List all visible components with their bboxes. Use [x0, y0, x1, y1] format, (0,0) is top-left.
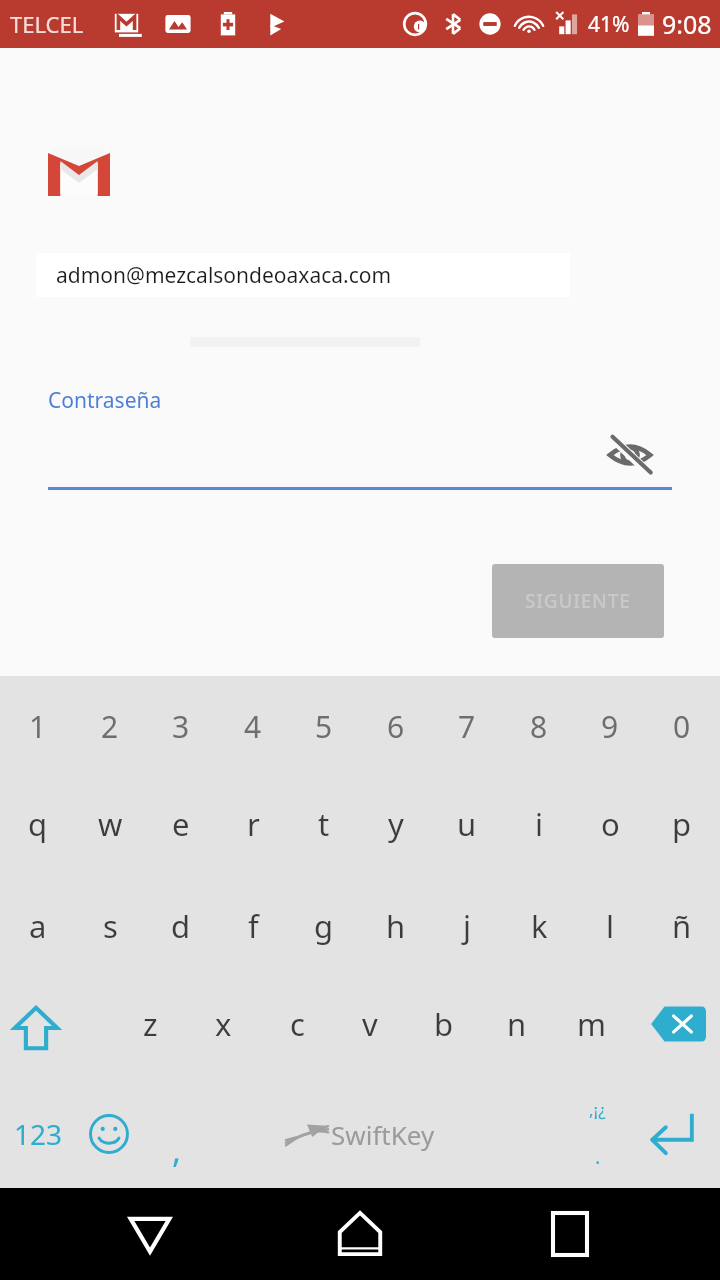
button[interactable]: admon@mezcalsondeoaxaca.com — [36, 253, 570, 297]
staticText: ñ — [672, 905, 692, 947]
button[interactable]: , — [146, 1110, 208, 1190]
button[interactable]: Mayúsculas — [0, 978, 72, 1078]
staticText: 0 — [673, 706, 691, 747]
button[interactable]: Inicio — [300, 1188, 420, 1280]
staticText: o — [601, 803, 620, 845]
staticText: i — [535, 803, 543, 845]
button[interactable]: Mostrar contraseña — [607, 436, 653, 474]
button[interactable]: Atrás — [90, 1188, 210, 1280]
button[interactable]: v — [336, 978, 404, 1078]
button[interactable]: l — [577, 878, 643, 978]
staticText: n — [507, 1003, 527, 1045]
staticText: SwiftKey — [331, 1117, 435, 1152]
button[interactable]: t — [291, 776, 357, 876]
button[interactable]: o — [577, 776, 643, 876]
staticText: ,¡¿ — [589, 1098, 606, 1121]
staticText: w — [98, 803, 123, 845]
staticText: z — [143, 1003, 158, 1045]
staticText: j — [463, 905, 471, 947]
button[interactable]: f — [220, 878, 286, 978]
button[interactable]: 4 — [220, 678, 286, 778]
button[interactable]: Emoji — [78, 1080, 140, 1188]
button[interactable]: Retroceso — [636, 978, 720, 1078]
button[interactable]: z — [116, 978, 184, 1078]
button[interactable]: i — [506, 776, 572, 876]
button[interactable]: SIGUIENTE — [492, 564, 664, 638]
staticText: 123 — [14, 1115, 63, 1153]
button[interactable]: d — [148, 878, 214, 978]
staticText: q — [28, 803, 48, 845]
button[interactable]: y — [363, 776, 429, 876]
button[interactable]: s — [77, 878, 143, 978]
button[interactable]: w — [77, 776, 143, 876]
staticText: 4 — [244, 706, 262, 747]
staticText: , — [172, 1127, 182, 1173]
button[interactable]: a — [5, 878, 71, 978]
button[interactable]: 8 — [506, 678, 572, 778]
button[interactable]: 123 — [4, 1080, 72, 1188]
staticText: 41% — [588, 10, 630, 39]
staticText: k — [531, 905, 548, 947]
button[interactable]: 0 — [649, 678, 715, 778]
button[interactable]: Recientes — [510, 1188, 630, 1280]
button[interactable]: n — [483, 978, 551, 1078]
staticText: 2 — [101, 706, 119, 747]
button[interactable]: m — [557, 978, 625, 1078]
button[interactable]: b — [410, 978, 478, 1078]
button[interactable]: p — [649, 776, 715, 876]
staticText: p — [672, 803, 692, 845]
staticText: b — [434, 1003, 454, 1045]
button[interactable]: q — [5, 776, 71, 876]
staticText: e — [172, 803, 190, 845]
button[interactable]: 2 — [77, 678, 143, 778]
button[interactable]: g — [291, 878, 357, 978]
button[interactable]: 9 — [577, 678, 643, 778]
staticText: 8 — [530, 706, 548, 747]
staticText: r — [247, 803, 260, 845]
staticText: y — [388, 803, 404, 845]
staticText: m — [577, 1003, 606, 1045]
staticText: t — [318, 803, 330, 845]
button[interactable]: 7 — [434, 678, 500, 778]
button[interactable]: 5 — [291, 678, 357, 778]
staticText: v — [362, 1003, 378, 1045]
staticText: 7 — [458, 706, 476, 747]
staticText: u — [457, 803, 477, 845]
button[interactable]: j — [434, 878, 500, 978]
button[interactable]: Contraseña — [48, 366, 672, 491]
staticText: f — [248, 905, 259, 947]
staticText: g — [314, 905, 334, 947]
button[interactable]: 6 — [363, 678, 429, 778]
button[interactable]: 1 — [5, 678, 71, 778]
button[interactable]: e — [148, 776, 214, 876]
button[interactable]: ,¡¿ — [562, 1080, 632, 1188]
staticText: a — [29, 905, 47, 947]
button[interactable]: c — [263, 978, 331, 1078]
staticText: s — [103, 905, 118, 947]
button[interactable]: u — [434, 776, 500, 876]
button[interactable]: Intro — [628, 1080, 712, 1188]
staticText: 5 — [315, 706, 333, 747]
button[interactable]: k — [506, 878, 572, 978]
button[interactable]: h — [363, 878, 429, 978]
staticText: l — [606, 905, 614, 947]
staticText: admon@mezcalsondeoaxaca.com — [56, 261, 392, 290]
staticText: 9 — [601, 706, 619, 747]
button[interactable]: x — [189, 978, 257, 1078]
staticText: 6 — [387, 706, 405, 747]
staticText: TELCEL — [10, 9, 84, 39]
button[interactable]: ñ — [649, 878, 715, 978]
staticText: Contraseña — [48, 386, 162, 415]
button[interactable]: 3 — [148, 678, 214, 778]
staticText: c — [290, 1003, 305, 1045]
staticText: h — [386, 905, 406, 947]
button[interactable]: r — [220, 776, 286, 876]
staticText: d — [171, 905, 191, 947]
staticText: SIGUIENTE — [525, 588, 631, 614]
staticText: x — [215, 1003, 232, 1045]
staticText: 1 — [29, 706, 47, 747]
staticText: . — [595, 1143, 601, 1170]
staticText: 9:08 — [662, 7, 712, 41]
button[interactable]: SwiftKey — [210, 1080, 510, 1188]
staticText: 3 — [172, 706, 190, 747]
